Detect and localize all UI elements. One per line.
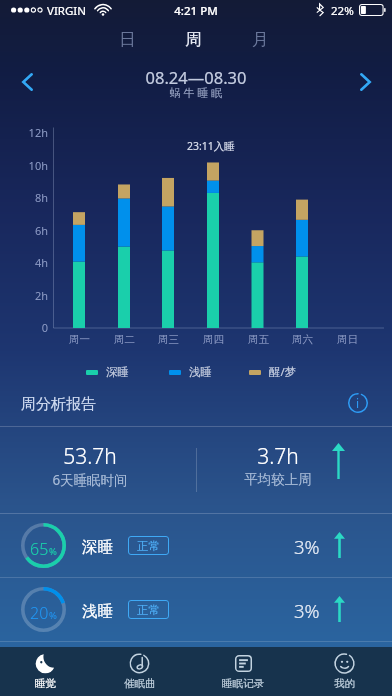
staticText: 53.7h xyxy=(20,442,160,471)
staticText: % xyxy=(49,609,57,622)
button[interactable]: 睡觉 xyxy=(0,647,90,696)
button[interactable]: 日 xyxy=(107,20,147,58)
button[interactable]: Next week xyxy=(344,61,386,103)
staticText: 正常 xyxy=(137,603,160,617)
staticText: 0 xyxy=(18,320,48,335)
staticText: 醒/梦 xyxy=(269,364,297,380)
button[interactable]: 20 xyxy=(0,578,392,641)
button[interactable]: Previous week xyxy=(6,61,48,103)
other: Increase xyxy=(334,596,345,622)
staticText: i xyxy=(356,395,360,411)
staticText: 浅睡 xyxy=(189,365,212,379)
staticText: 6天睡眠时间 xyxy=(20,471,160,489)
staticText: 20 xyxy=(30,602,49,624)
staticText: 正常 xyxy=(137,539,160,553)
staticText: 蜗 牛 睡 眠 xyxy=(96,85,296,100)
staticText: 12h xyxy=(18,125,48,140)
button[interactable]: 65 xyxy=(0,514,392,577)
staticText: 月 xyxy=(252,29,269,50)
button[interactable]: 周 xyxy=(173,20,213,58)
staticText: VIRGIN xyxy=(47,3,86,19)
staticText: 周二 xyxy=(114,333,135,346)
staticText: 4h xyxy=(18,255,48,270)
staticText: 日 xyxy=(119,29,136,50)
staticText: 22% xyxy=(331,3,354,19)
staticText: 周六 xyxy=(292,333,313,346)
staticText: % xyxy=(49,545,57,558)
staticText: 3.7h xyxy=(208,442,348,471)
button[interactable]: 睡眠记录 xyxy=(189,647,297,696)
staticText: 催眠曲 xyxy=(124,677,156,690)
staticText: 3% xyxy=(294,534,320,559)
staticText: 周 xyxy=(185,29,202,50)
staticText: 8h xyxy=(18,190,48,205)
button[interactable]: 催眠曲 xyxy=(90,647,189,696)
staticText: 周日 xyxy=(337,333,358,346)
staticText: 平均较上周 xyxy=(208,471,348,488)
staticText: 周三 xyxy=(158,333,179,346)
button[interactable]: 月 xyxy=(240,20,280,58)
staticText: 周一 xyxy=(69,333,90,346)
staticText: 我的 xyxy=(334,677,355,690)
staticText: 23:11入睡 xyxy=(187,139,235,153)
staticText: 深睡 xyxy=(106,365,129,379)
staticText: 睡觉 xyxy=(35,677,56,690)
staticText: 08.24—08.30 xyxy=(96,66,296,88)
staticText: 浅睡 xyxy=(82,601,113,621)
staticText: 10h xyxy=(18,158,48,173)
staticText: 6h xyxy=(18,223,48,238)
staticText: 2h xyxy=(18,288,48,303)
staticText: 4:21 PM xyxy=(146,3,246,19)
other: Increase xyxy=(334,532,345,558)
button[interactable]: Info xyxy=(344,389,372,417)
staticText: 周四 xyxy=(203,333,224,346)
staticText: 睡眠记录 xyxy=(222,677,264,690)
staticText: 深睡 xyxy=(82,537,113,557)
other: Increase xyxy=(332,443,345,479)
button[interactable]: 周分析报告 xyxy=(0,385,392,426)
staticText: 3% xyxy=(294,598,320,623)
button[interactable]: 我的 xyxy=(297,647,392,696)
staticText: 周五 xyxy=(248,333,269,346)
staticText: 周分析报告 xyxy=(21,395,96,414)
staticText: 65 xyxy=(30,538,49,560)
